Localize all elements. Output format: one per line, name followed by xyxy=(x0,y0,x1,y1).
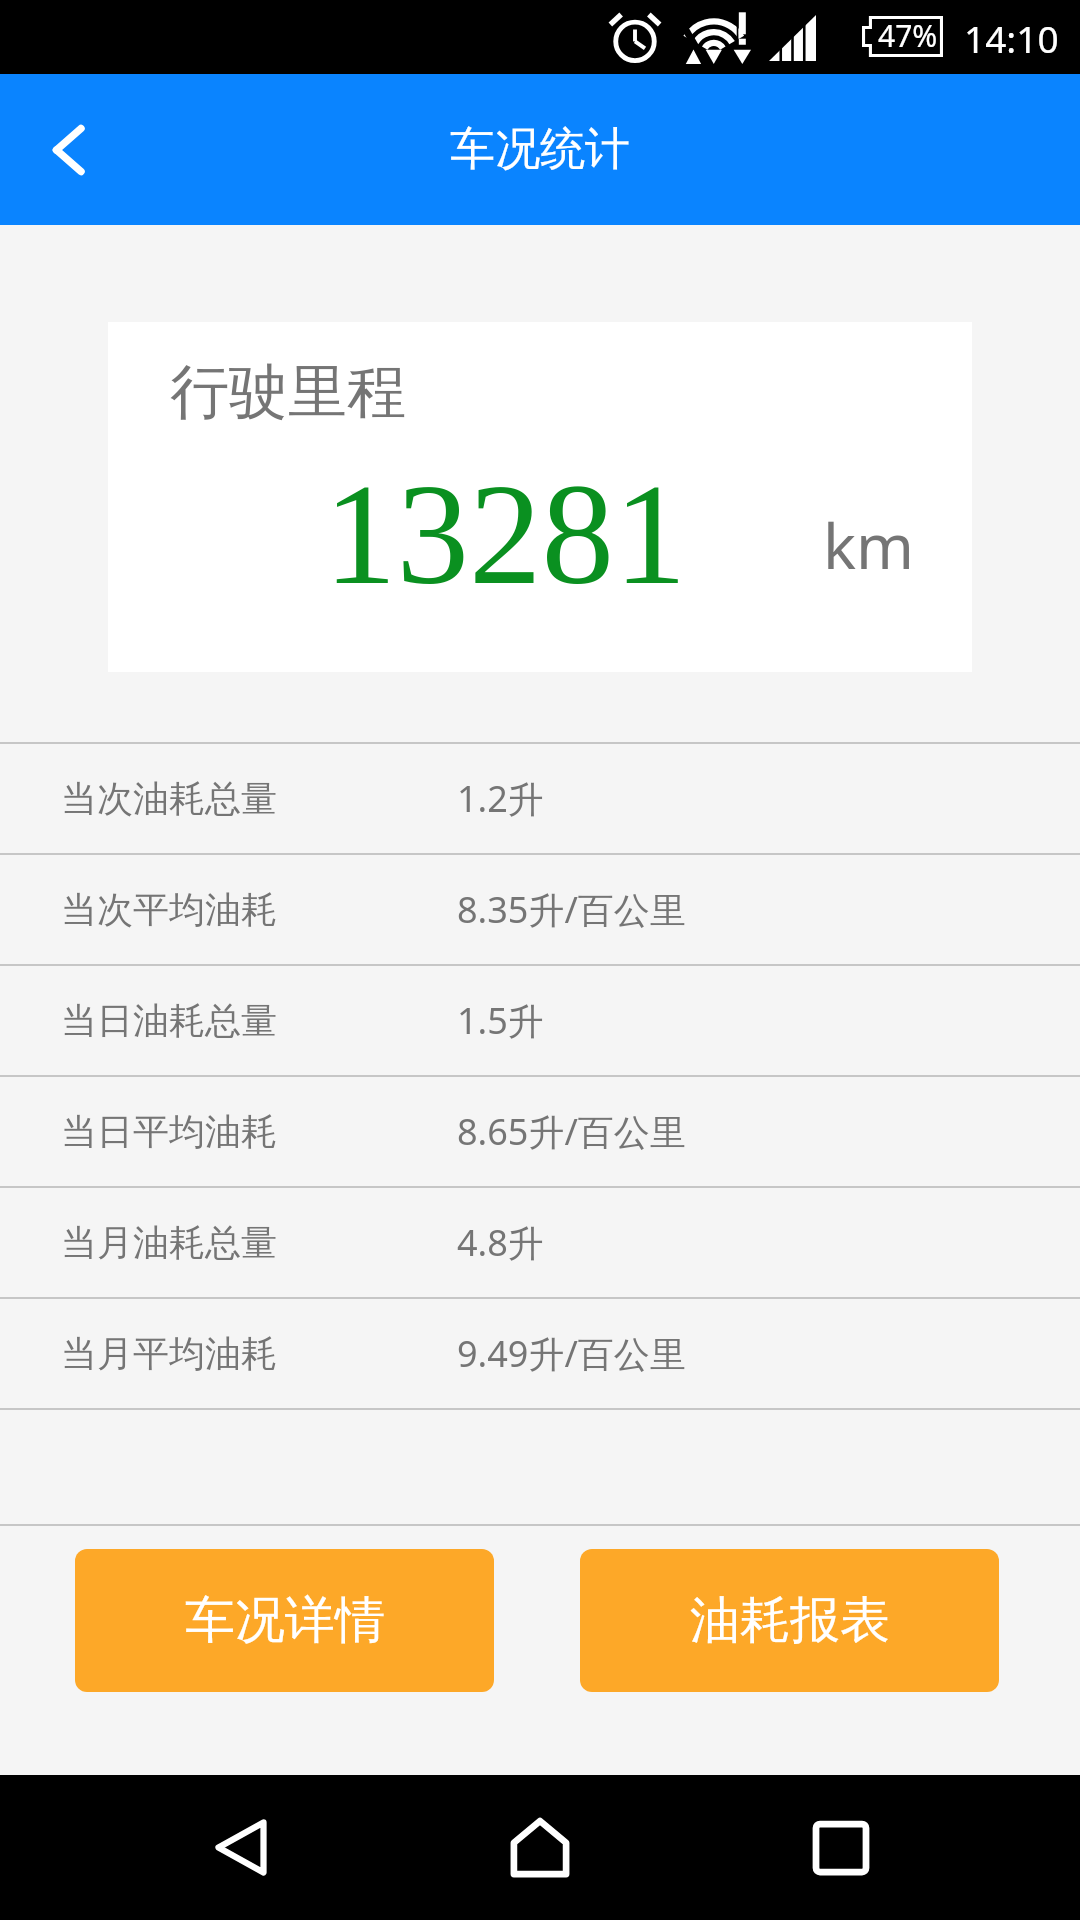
staticText: 1.5升 xyxy=(457,996,544,1045)
staticText: 当次油耗总量 xyxy=(61,776,457,821)
staticText: 行驶里程 xyxy=(170,355,406,429)
button[interactable]: Back xyxy=(176,1775,306,1920)
button[interactable]: 当日平均油耗 xyxy=(0,1077,1080,1186)
button[interactable]: 当月平均油耗 xyxy=(0,1299,1080,1408)
button[interactable]: 油耗报表 xyxy=(580,1549,999,1692)
button[interactable]: Recent apps xyxy=(776,1775,906,1920)
staticText: 9.49升/百公里 xyxy=(457,1329,686,1378)
button[interactable]: 当日油耗总量 xyxy=(0,966,1080,1075)
staticText: km xyxy=(823,503,915,587)
staticText: 13281 xyxy=(324,454,687,615)
staticText: 4.8升 xyxy=(457,1218,544,1267)
staticText: 当月平均油耗 xyxy=(61,1331,457,1376)
staticText: 8.35升/百公里 xyxy=(457,885,686,934)
staticText: 14:10 xyxy=(964,13,1059,63)
staticText: 47% xyxy=(878,15,938,56)
button[interactable]: 当月油耗总量 xyxy=(0,1188,1080,1297)
staticText: 当月油耗总量 xyxy=(61,1220,457,1265)
button[interactable]: Home xyxy=(475,1775,605,1920)
staticText: 1.2升 xyxy=(457,774,544,823)
staticText: 当日油耗总量 xyxy=(61,998,457,1043)
staticText: 车况统计 xyxy=(450,121,630,178)
staticText: 车况详情 xyxy=(185,1589,385,1652)
staticText: 油耗报表 xyxy=(690,1589,890,1652)
staticText: 8.65升/百公里 xyxy=(457,1107,686,1156)
button[interactable]: 当次平均油耗 xyxy=(0,855,1080,964)
staticText: 当次平均油耗 xyxy=(61,887,457,932)
staticText: 当日平均油耗 xyxy=(61,1109,457,1154)
button[interactable]: 车况详情 xyxy=(75,1549,494,1692)
button[interactable]: 当次油耗总量 xyxy=(0,744,1080,853)
button[interactable]: Back xyxy=(20,100,120,200)
